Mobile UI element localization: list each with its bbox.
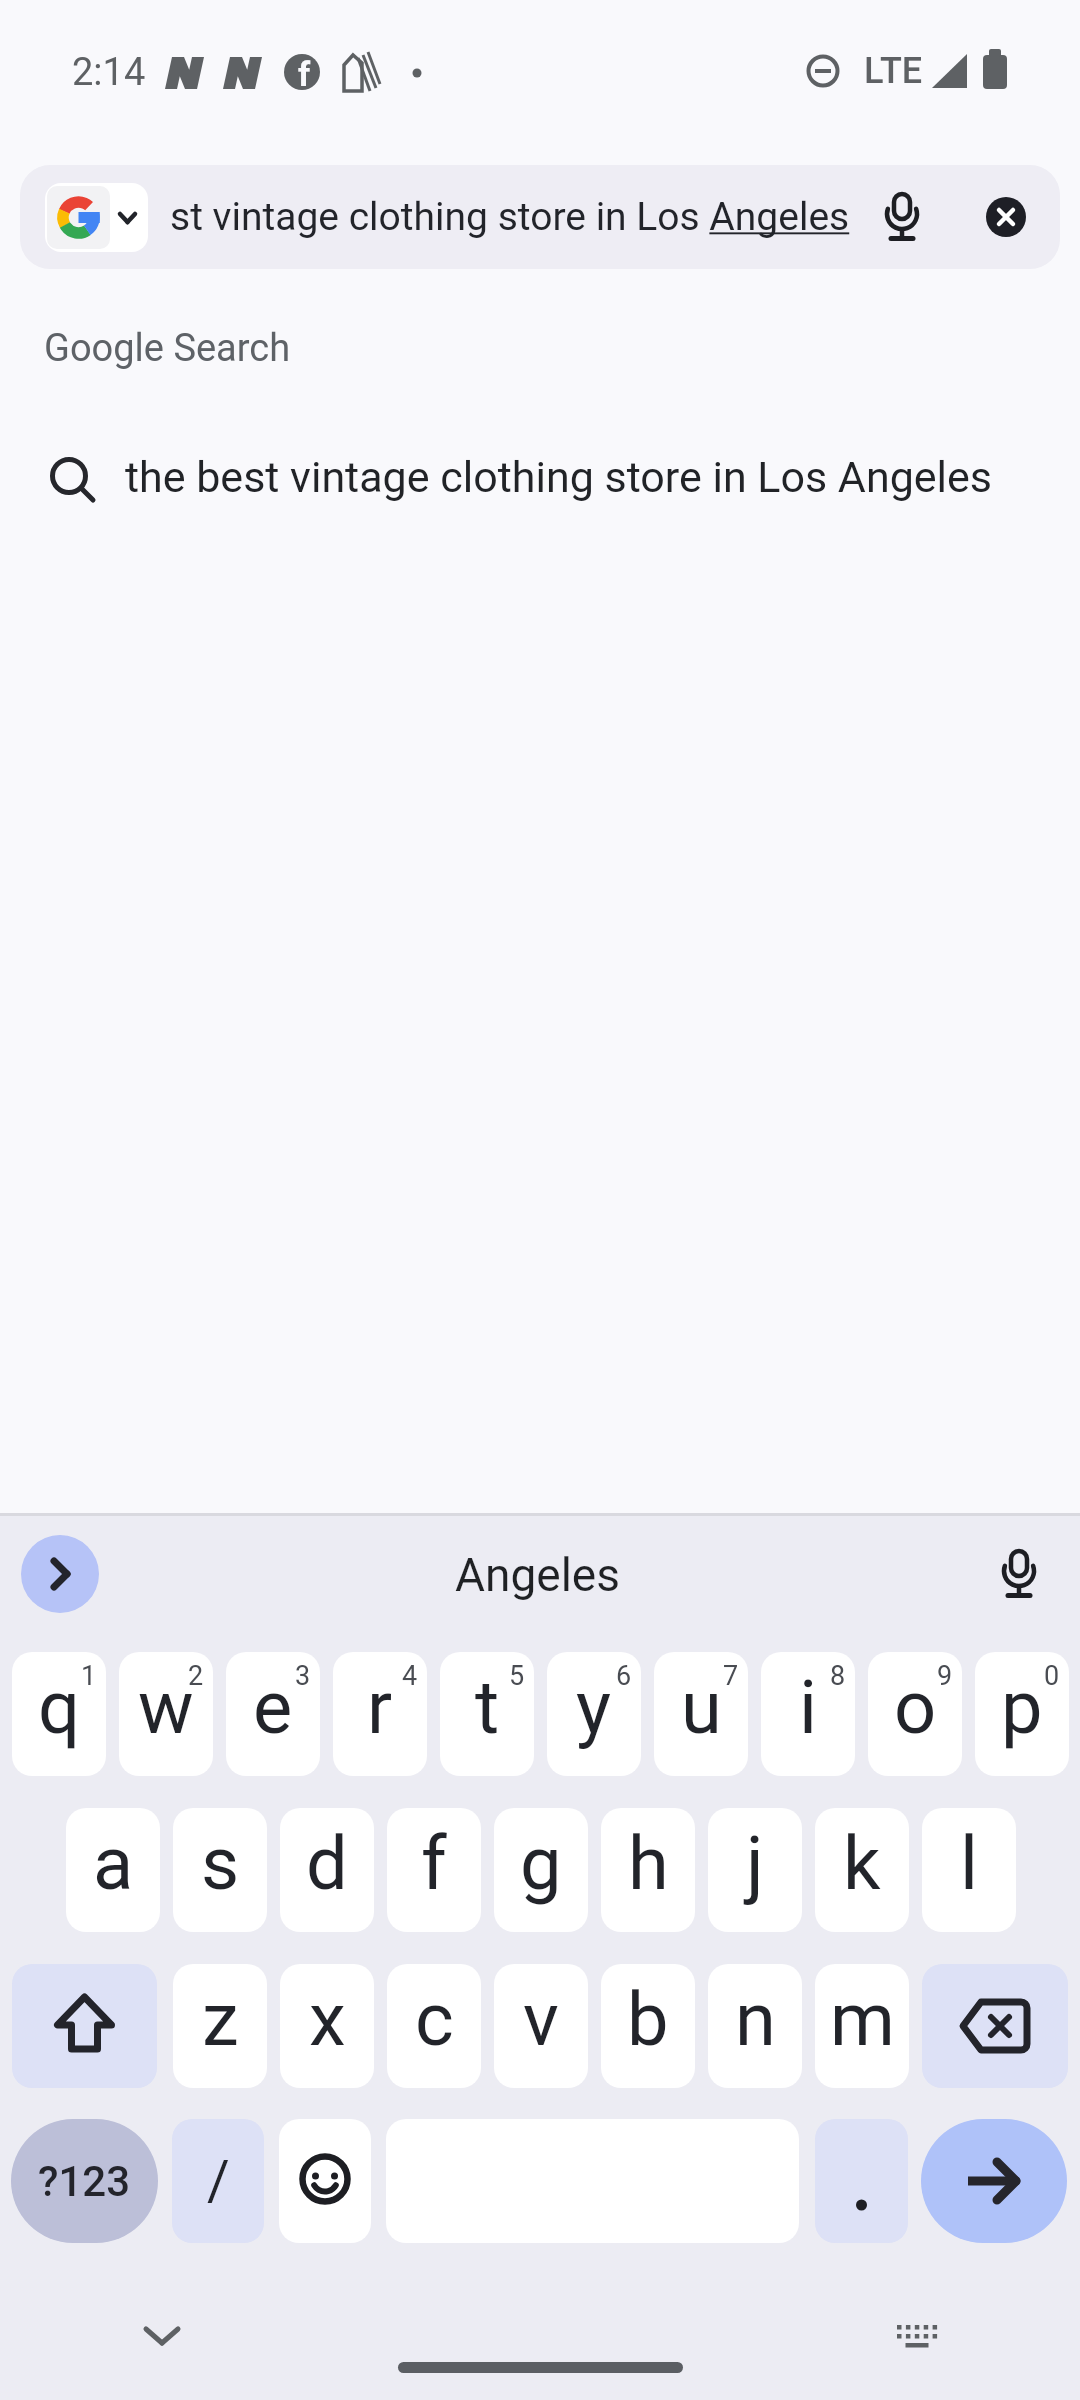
button[interactable] [815,2119,908,2243]
button[interactable]: u [654,1652,748,1776]
staticText: z [202,1976,239,2063]
staticText: 0 [1044,1660,1060,1692]
staticText: n [735,1976,776,2063]
button[interactable]: z [173,1964,267,2088]
staticText: e [253,1664,293,1751]
button[interactable]: j [708,1808,802,1932]
staticText: t [475,1664,500,1751]
staticText: l [960,1820,978,1907]
staticText: s [201,1820,240,1907]
button[interactable]: p [975,1652,1069,1776]
button[interactable]: a [66,1808,160,1932]
button[interactable]: e [226,1652,320,1776]
staticText: b [627,1976,669,2063]
button[interactable] [922,1964,1068,2088]
staticText: 5 [509,1660,525,1692]
staticText: a [93,1820,134,1907]
button[interactable] [12,1964,157,2088]
button[interactable]: y [547,1652,641,1776]
button[interactable]: s [173,1808,267,1932]
staticText: x [309,1976,346,2063]
staticText: k [843,1820,881,1907]
button[interactable] [921,2119,1067,2243]
staticText: c [415,1976,454,2063]
button[interactable]: n [708,1964,802,2088]
button[interactable] [984,1535,1056,1613]
button[interactable]: Angeles [337,1546,737,1604]
button[interactable] [279,2119,371,2243]
staticText: o [894,1664,937,1751]
staticText: p [1001,1664,1043,1751]
button[interactable]: o [868,1652,962,1776]
button[interactable]: x [280,1964,374,2088]
staticText: r [367,1664,393,1751]
button[interactable]: w [119,1652,213,1776]
button[interactable]: the best vintage clothing store in Los A… [0,436,1080,518]
button[interactable]: f [387,1808,481,1932]
staticText: q [38,1664,81,1751]
staticText: 6 [616,1660,632,1692]
staticText: i [799,1664,817,1751]
staticText: the best vintage clothing store in Los A… [125,452,993,502]
staticText: y [576,1664,612,1751]
staticText: m [830,1976,895,2063]
staticText: f [298,54,311,90]
button[interactable]: b [601,1964,695,2088]
staticText: st vintage clothing store in Los Angeles [170,194,850,240]
button[interactable]: c [387,1964,481,2088]
staticText: 8 [830,1660,846,1692]
staticText: 3 [295,1660,311,1692]
button[interactable]: ?123 [11,2119,158,2243]
staticText: v [523,1976,559,2063]
button[interactable]: v [494,1964,588,2088]
staticText: w [138,1664,194,1751]
button[interactable]: l [922,1808,1016,1932]
staticText: 9 [937,1660,953,1692]
button[interactable]: q [12,1652,106,1776]
button[interactable]: g [494,1808,588,1932]
staticText: 4 [402,1660,418,1692]
button[interactable]: k [815,1808,909,1932]
staticText: d [306,1820,348,1907]
staticText: LTE [864,50,923,92]
staticText: j [746,1820,764,1907]
staticText: Angeles [455,1548,620,1602]
button[interactable]: i [761,1652,855,1776]
button[interactable]: d [280,1808,374,1932]
staticText: g [520,1820,562,1907]
staticText: ?123 [38,2157,131,2206]
staticText: h [628,1820,669,1907]
staticText: u [681,1664,722,1751]
button[interactable]: t [440,1652,534,1776]
button[interactable] [130,2305,194,2369]
staticText: 2:14 [72,50,146,95]
button[interactable]: r [333,1652,427,1776]
button[interactable]: st vintage clothing store in Los Angeles [20,165,1060,269]
staticText: 2 [188,1660,204,1692]
button[interactable] [986,197,1026,237]
staticText: 7 [723,1660,739,1692]
button[interactable] [45,183,148,252]
button[interactable] [885,2305,949,2369]
staticText: 1 [81,1660,97,1692]
button[interactable]: h [601,1808,695,1932]
button[interactable]: / [172,2119,264,2243]
staticText: f [421,1820,447,1907]
button[interactable] [21,1535,99,1613]
staticText: Google Search [44,326,291,371]
button[interactable]: m [815,1964,909,2088]
staticText: / [207,2149,230,2213]
